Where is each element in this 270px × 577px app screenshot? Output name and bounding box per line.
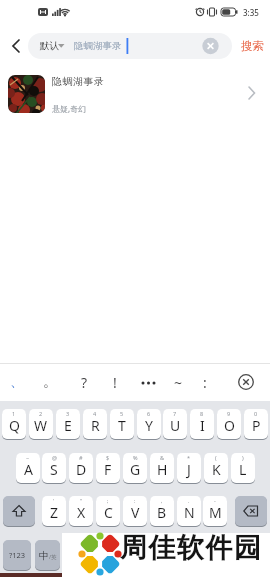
staticText: :: [203, 373, 207, 392]
button[interactable]: 中: [35, 540, 60, 570]
button[interactable]: #: [69, 453, 93, 483]
staticText: 5: [120, 410, 124, 417]
button[interactable]: [6, 36, 26, 56]
button[interactable]: 隐蜩湖事录: [0, 70, 270, 118]
button[interactable]: ~: [16, 453, 40, 483]
staticText: @: [52, 454, 57, 461]
staticText: :: [134, 497, 136, 504]
staticText: P: [252, 416, 261, 435]
button[interactable]: (: [204, 453, 228, 483]
staticText: O: [224, 416, 235, 435]
staticText: 悬疑,奇幻: [52, 103, 87, 114]
staticText: M: [209, 503, 222, 522]
staticText: 2: [39, 410, 43, 417]
staticText: V: [131, 503, 140, 522]
button[interactable]: [64, 540, 194, 570]
button[interactable]: 6: [137, 409, 161, 439]
staticText: 1: [12, 410, 16, 417]
button[interactable]: 4: [83, 409, 107, 439]
staticText: ): [242, 454, 244, 461]
staticText: X: [77, 503, 86, 522]
button[interactable]: :: [123, 496, 147, 526]
staticText: ?123: [9, 550, 26, 560]
staticText: E: [64, 416, 72, 435]
staticText: ': [53, 497, 55, 504]
staticText: 、: [10, 373, 24, 391]
staticText: 。: [43, 373, 57, 391]
staticText: 3:35: [243, 7, 259, 18]
staticText: L: [239, 460, 247, 479]
staticText: ~: [174, 373, 183, 392]
staticText: #: [79, 454, 83, 461]
button[interactable]: 9: [217, 409, 241, 439]
button[interactable]: 3: [56, 409, 80, 439]
button[interactable]: ;: [96, 496, 120, 526]
staticText: 周佳软件园: [120, 531, 263, 565]
button[interactable]: ': [42, 496, 66, 526]
staticText: U: [170, 416, 181, 435]
staticText: Z: [50, 503, 59, 522]
staticText: S: [50, 460, 58, 479]
button[interactable]: 。: [40, 372, 60, 392]
staticText: !: [113, 373, 117, 392]
staticText: $: [106, 454, 110, 461]
button[interactable]: :: [195, 372, 215, 392]
staticText: 0: [254, 410, 258, 417]
button[interactable]: @: [42, 453, 66, 483]
staticText: ~: [26, 454, 30, 461]
button[interactable]: ": [69, 496, 93, 526]
button[interactable]: $: [96, 453, 120, 483]
staticText: I: [200, 416, 205, 435]
button[interactable]: &: [150, 453, 174, 483]
staticText: .: [188, 497, 190, 504]
button[interactable]: [236, 372, 256, 392]
button[interactable]: 7: [163, 409, 187, 439]
staticText: A: [24, 460, 33, 479]
button[interactable]: ): [231, 453, 255, 483]
button[interactable]: 5: [110, 409, 134, 439]
staticText: H: [157, 460, 168, 479]
staticText: 9: [227, 410, 231, 417]
button[interactable]: -: [203, 496, 227, 526]
staticText: ;: [107, 497, 109, 504]
button[interactable]: ~: [168, 372, 188, 392]
button[interactable]: %: [123, 453, 147, 483]
button[interactable]: 0: [244, 409, 268, 439]
staticText: 3: [66, 410, 70, 417]
staticText: R: [91, 416, 100, 435]
button[interactable]: 8: [190, 409, 214, 439]
staticText: W: [34, 416, 48, 435]
staticText: 默认: [40, 40, 59, 52]
staticText: Q: [9, 416, 20, 435]
button[interactable]: *: [177, 453, 201, 483]
staticText: ": [80, 497, 83, 504]
button[interactable]: [235, 496, 267, 526]
staticText: 隐蜩湖事录: [52, 75, 105, 88]
button[interactable]: !: [105, 372, 125, 392]
staticText: 中: [39, 549, 49, 562]
button[interactable]: [3, 496, 35, 526]
staticText: 隐蜩湖事录: [74, 40, 122, 52]
staticText: &: [160, 454, 165, 461]
staticText: K: [212, 460, 221, 479]
button[interactable]: 默认: [28, 33, 232, 59]
button[interactable]: .: [177, 496, 201, 526]
staticText: 4: [93, 410, 97, 417]
button[interactable]: ?123: [3, 540, 31, 570]
button[interactable]: 2: [29, 409, 53, 439]
button[interactable]: ,: [150, 496, 174, 526]
button[interactable]: 、: [7, 372, 27, 392]
button[interactable]: ?: [74, 372, 94, 392]
button[interactable]: 1: [2, 409, 26, 439]
staticText: 7: [173, 410, 177, 417]
staticText: F: [104, 460, 112, 479]
staticText: N: [184, 503, 195, 522]
button[interactable]: 搜索: [237, 37, 267, 55]
staticText: T: [118, 416, 126, 435]
staticText: (: [215, 454, 217, 461]
staticText: 搜索: [241, 39, 264, 53]
staticText: %: [133, 454, 138, 461]
staticText: D: [76, 460, 87, 479]
staticText: 8: [200, 410, 204, 417]
staticText: /英: [49, 553, 57, 561]
